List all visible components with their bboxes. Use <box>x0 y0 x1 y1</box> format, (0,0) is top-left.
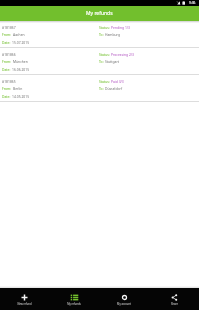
staticText: Share <box>171 302 178 305</box>
staticText: Date: <box>2 40 11 45</box>
button[interactable]: Share <box>149 288 199 310</box>
staticText: From: <box>2 86 12 91</box>
staticText: New refund <box>17 302 32 305</box>
staticText: To: <box>99 59 104 64</box>
staticText: Date: <box>2 67 11 72</box>
staticText: 9:36 <box>189 1 196 5</box>
staticText: 14.05.2015 <box>12 94 30 99</box>
staticText: Status: <box>99 52 110 57</box>
staticText: Processing 2/3 <box>111 52 134 57</box>
staticText: Stuttgart <box>105 59 120 64</box>
staticText: From: <box>2 59 12 64</box>
staticText: #181866 <box>2 52 16 57</box>
button[interactable]: My refunds <box>49 288 99 310</box>
staticText: München <box>13 59 28 64</box>
staticText: Paid 3/3 <box>111 79 124 84</box>
staticText: #181867 <box>2 25 16 30</box>
staticText: To: <box>99 32 104 37</box>
staticText: 15.07.2015 <box>12 40 30 45</box>
staticText: Berlin <box>13 86 23 91</box>
staticText: Düsseldorf <box>105 86 123 91</box>
staticText: Status: <box>99 25 110 30</box>
staticText: To: <box>99 86 104 91</box>
staticText: #181865 <box>2 79 16 84</box>
staticText: Hamburg <box>105 32 121 37</box>
staticText: 16.06.2015 <box>12 67 30 72</box>
staticText: Date: <box>2 94 11 99</box>
button[interactable]: #181867 <box>0 21 199 48</box>
staticText: My refunds <box>67 302 81 305</box>
staticText: My account <box>117 302 131 305</box>
staticText: From: <box>2 32 12 37</box>
button[interactable]: #181865 <box>0 75 199 102</box>
staticText: Aachen <box>13 32 25 37</box>
staticText: My refunds <box>86 10 113 17</box>
staticText: Pending 1/3 <box>111 25 130 30</box>
button[interactable]: New refund <box>0 288 49 310</box>
button[interactable]: My account <box>99 288 149 310</box>
button[interactable]: #181866 <box>0 48 199 75</box>
staticText: Status: <box>99 79 110 84</box>
